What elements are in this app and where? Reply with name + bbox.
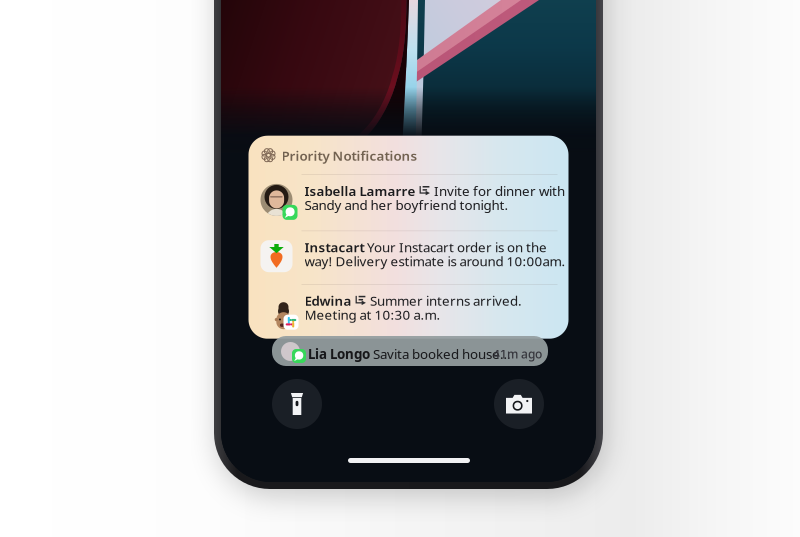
- button[interactable]: Flashlight: [272, 379, 322, 429]
- staticText: 41m ago: [493, 346, 542, 362]
- staticText: Sandy and her boyfriend tonight.: [304, 196, 508, 214]
- staticText: way! Delivery estimate is around 10:00am…: [304, 252, 565, 270]
- staticText: Priority Notifications: [281, 147, 417, 164]
- staticText: Invite for dinner with: [434, 182, 565, 200]
- staticText: Lia Longo Savita booked house…: [308, 345, 511, 363]
- button[interactable]: Camera: [494, 379, 544, 429]
- staticText: Isabella Lamarre: [304, 182, 415, 200]
- staticText: Instacart: [304, 238, 364, 256]
- staticText: Summer interns arrived.: [370, 292, 522, 309]
- staticText: Edwina: [304, 292, 351, 309]
- staticText: Meeting at 10:30 a.m.: [304, 306, 440, 323]
- staticText: Your Instacart order is on the: [367, 238, 547, 256]
